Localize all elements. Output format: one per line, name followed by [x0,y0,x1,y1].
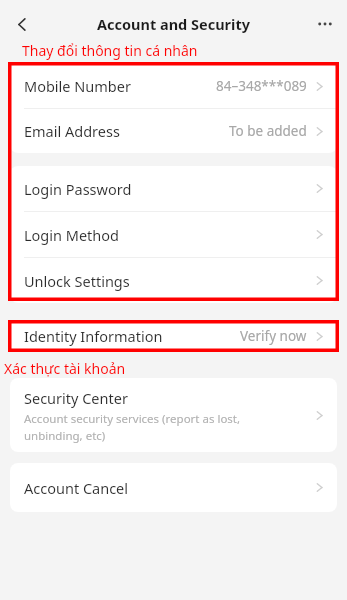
button[interactable]: Unlock Settings [10,258,337,303]
staticText: 84–348***089 [216,77,307,95]
staticText: Email Address [24,121,120,141]
button[interactable]: Email Address [10,109,337,153]
button[interactable]: Mobile Number [10,64,337,108]
staticText: Identity Information [24,326,163,346]
staticText: Mobile Number [24,76,131,96]
button[interactable]: Login Password [10,166,337,211]
staticText: Verify now [240,327,307,345]
staticText: Unlock Settings [24,271,130,291]
button[interactable]: More options [311,10,339,38]
staticText: Xác thực tài khoản [4,359,126,378]
button[interactable]: Identity Information [10,320,337,352]
button[interactable]: Login Method [10,212,337,257]
staticText: Thay đổi thông tin cá nhân [22,41,198,60]
button[interactable]: Security Center [10,378,337,452]
staticText: Login Method [24,225,119,245]
staticText: Security Center [24,388,128,408]
staticText: Account Cancel [24,478,129,498]
staticText: Account security services (report as los… [24,411,241,443]
staticText: To be added [229,122,307,140]
button[interactable]: Back [6,8,38,40]
staticText: Login Password [24,179,132,199]
button[interactable]: Account Cancel [10,463,337,512]
staticText: Account and Security [97,14,250,34]
